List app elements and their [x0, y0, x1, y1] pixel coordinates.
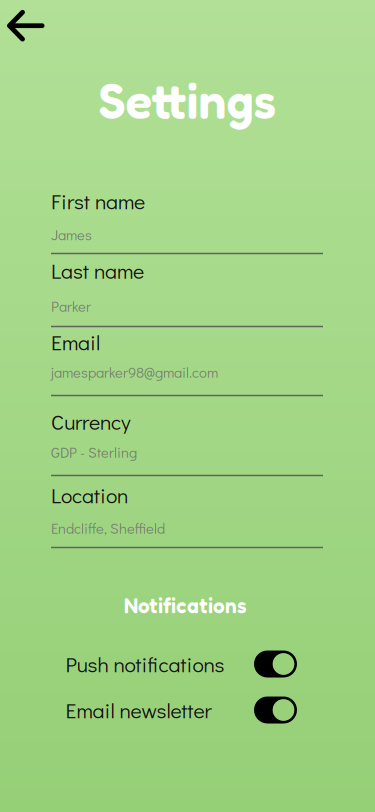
staticText: Settings — [98, 71, 276, 130]
staticText: Endcliffe, Sheffield — [51, 518, 165, 538]
staticText: Notifications — [124, 593, 247, 618]
button[interactable]: Email newsletter — [66, 694, 297, 726]
staticText: Email — [51, 328, 100, 356]
staticText: Email newsletter — [66, 696, 212, 724]
staticText: Location — [51, 481, 128, 509]
staticText: Last name — [51, 256, 144, 284]
staticText: Parker — [51, 296, 91, 316]
button[interactable]: Back — [1, 3, 49, 49]
staticText: GDP - Sterling — [51, 442, 137, 462]
staticText: James — [51, 225, 92, 244]
staticText: First name — [51, 187, 145, 215]
staticText: jamesparker98@gmail.com — [51, 362, 218, 382]
button[interactable]: Push notifications — [66, 648, 297, 680]
staticText: Push notifications — [66, 650, 225, 678]
staticText: Currency — [51, 407, 131, 435]
